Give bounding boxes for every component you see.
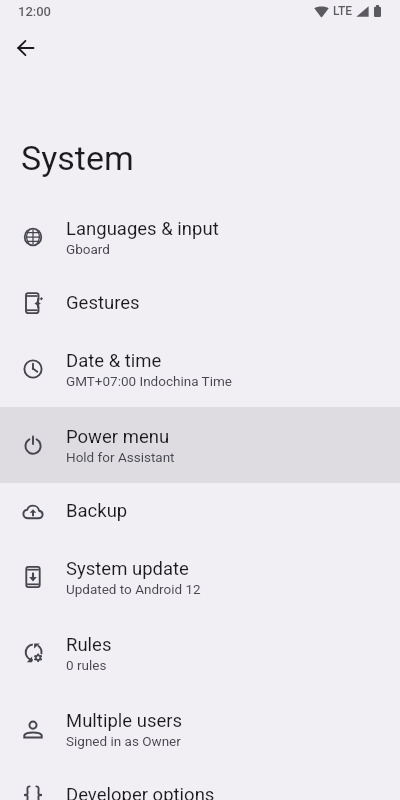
staticText: Languages & input [66,218,219,240]
staticText: Gestures [66,292,140,314]
staticText: 0 rules [66,657,107,673]
button[interactable]: Multiple users [0,691,400,767]
staticText: Signed in as Owner [66,733,181,749]
button[interactable]: Languages & input [0,199,400,275]
staticText: Gboard [66,241,110,257]
button[interactable]: Rules [0,615,400,691]
staticText: Hold for Assistant [66,449,175,465]
staticText: Developer options [66,784,215,800]
staticText: GMT+07:00 Indochina Time [66,373,232,389]
staticText: System update [66,558,189,580]
button[interactable]: Power menu [0,407,400,483]
staticText: Backup [66,500,128,522]
staticText: 12:00 [18,4,51,19]
button[interactable]: Developer options [0,767,400,800]
staticText: System [21,138,134,178]
button[interactable]: Gestures [0,275,400,331]
button[interactable]: Date & time [0,331,400,407]
staticText: Rules [66,634,112,656]
button[interactable]: System update [0,539,400,615]
button[interactable]: Back [10,32,42,64]
button[interactable]: Backup [0,483,400,539]
staticText: LTE [333,4,353,18]
staticText: Multiple users [66,710,183,732]
staticText: Power menu [66,426,170,448]
staticText: Updated to Android 12 [66,581,201,597]
staticText: Date & time [66,350,162,372]
